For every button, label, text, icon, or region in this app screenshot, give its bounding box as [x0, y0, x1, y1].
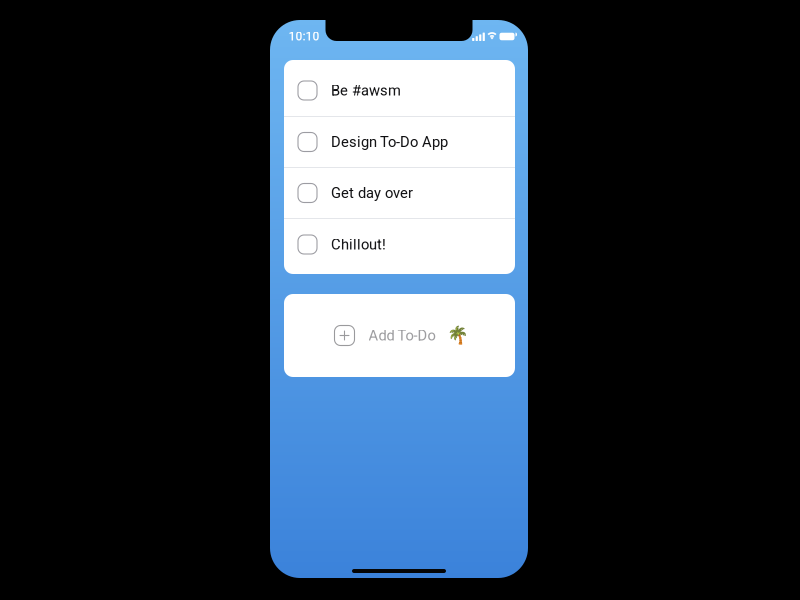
staticText: Get day over — [331, 184, 413, 202]
button[interactable]: Chillout! — [284, 219, 515, 270]
staticText: Add To-Do — [368, 327, 435, 344]
staticText: 10:10 — [288, 29, 319, 44]
button[interactable]: Design To-Do App — [284, 117, 515, 167]
button[interactable]: Be #awsm — [284, 65, 515, 116]
staticText: Be #awsm — [331, 82, 401, 99]
staticText: Design To-Do App — [331, 133, 448, 151]
staticText: 🌴 — [446, 326, 468, 345]
button[interactable]: Add To-Do — [284, 294, 515, 377]
staticText: Chillout! — [331, 236, 386, 253]
button[interactable]: Get day over — [284, 168, 515, 218]
